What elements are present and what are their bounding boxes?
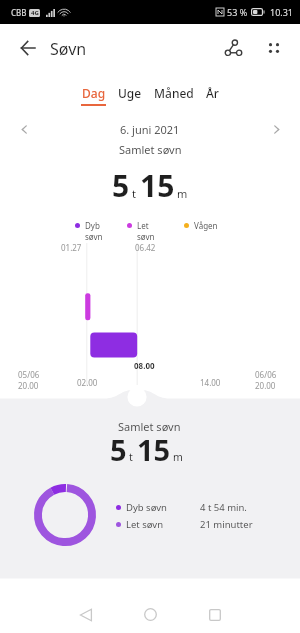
staticText: 06.42 bbox=[135, 242, 156, 253]
staticText: søvn bbox=[85, 231, 103, 242]
staticText: 05/06 bbox=[18, 369, 40, 380]
staticText: År bbox=[206, 85, 219, 101]
button[interactable]: Home bbox=[130, 594, 171, 633]
button[interactable]: Måned bbox=[148, 85, 200, 106]
staticText: 01.27 bbox=[61, 242, 82, 253]
button[interactable]: Back bbox=[65, 594, 106, 633]
button[interactable]: Previous day bbox=[14, 119, 34, 139]
staticText: Dag bbox=[82, 85, 106, 101]
staticText: 21 minutter bbox=[200, 518, 253, 531]
staticText: m bbox=[177, 186, 188, 201]
staticText: 53 % bbox=[227, 6, 248, 18]
button[interactable]: Let søvn bbox=[116, 518, 253, 531]
staticText: 06/06 bbox=[255, 369, 277, 380]
staticText: 15 bbox=[140, 165, 175, 206]
staticText: Samlet søvn bbox=[118, 419, 181, 434]
staticText: 02.00 bbox=[77, 377, 98, 388]
staticText: Måned bbox=[154, 85, 194, 101]
staticText: søvn bbox=[137, 231, 155, 242]
button[interactable]: Back bbox=[6, 26, 49, 69]
staticText: Uge bbox=[118, 85, 142, 101]
button[interactable]: More options bbox=[252, 26, 295, 69]
button[interactable]: Dyb søvn bbox=[116, 501, 247, 514]
button[interactable]: Uge bbox=[112, 85, 148, 106]
button[interactable]: Recents bbox=[194, 594, 235, 633]
staticText: 14.00 bbox=[200, 377, 221, 388]
staticText: Dyb bbox=[85, 220, 100, 231]
button[interactable]: Next day bbox=[266, 119, 286, 139]
staticText: 5 bbox=[110, 430, 127, 469]
staticText: 15 bbox=[137, 430, 171, 469]
button[interactable]: Share bbox=[212, 26, 255, 69]
staticText: 4 t 54 min. bbox=[200, 501, 247, 514]
staticText: 10.31 bbox=[270, 6, 294, 18]
staticText: 6. juni 2021 bbox=[120, 122, 180, 137]
button[interactable]: Dag bbox=[75, 85, 112, 106]
staticText: Vågen bbox=[194, 220, 218, 231]
staticText: CBB bbox=[11, 7, 27, 18]
staticText: t bbox=[132, 186, 136, 201]
staticText: 08.00 bbox=[134, 360, 155, 371]
staticText: Let søvn bbox=[126, 518, 164, 531]
staticText: Dyb søvn bbox=[126, 501, 167, 514]
staticText: 20.00 bbox=[255, 380, 276, 391]
staticText: Søvn bbox=[50, 38, 87, 60]
staticText: m bbox=[173, 450, 183, 464]
staticText: 4G bbox=[31, 9, 39, 17]
staticText: 20.00 bbox=[18, 380, 39, 391]
button[interactable]: År bbox=[200, 85, 225, 106]
staticText: 5 bbox=[112, 165, 130, 206]
staticText: Samlet søvn bbox=[119, 142, 182, 157]
staticText: t bbox=[129, 450, 133, 464]
staticText: Let bbox=[137, 220, 149, 231]
